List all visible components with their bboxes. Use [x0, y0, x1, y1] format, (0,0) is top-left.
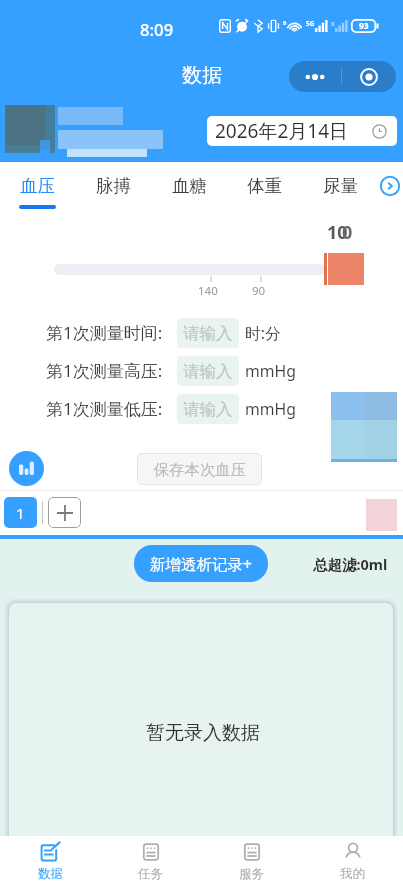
staticText: 第1次测量时间:	[46, 321, 163, 344]
button[interactable]: Close	[342, 61, 396, 92]
staticText: 8:09	[140, 18, 174, 41]
staticText: 10	[327, 220, 348, 245]
button[interactable]: 脉搏	[79, 162, 147, 212]
button[interactable]: 请输入	[177, 394, 239, 424]
button[interactable]: 请输入	[177, 318, 239, 348]
staticText: 保存本次血压	[154, 460, 246, 479]
staticText: 血糖	[172, 175, 207, 197]
staticText: 140	[198, 283, 218, 299]
button[interactable]: 血糖	[155, 162, 223, 212]
staticText: 第1次测量高压:	[46, 359, 163, 382]
button[interactable]: 服务	[201, 836, 302, 888]
staticText: 体重	[247, 175, 282, 197]
staticText: 新增透析记录+	[150, 553, 252, 574]
button[interactable]: 任务	[100, 836, 201, 888]
staticText: 数据	[182, 63, 222, 88]
button[interactable]: 保存本次血压	[137, 453, 262, 485]
button[interactable]: 1	[4, 497, 37, 528]
button[interactable]: More tabs	[380, 176, 400, 196]
staticText: 请输入	[183, 399, 233, 420]
staticText: 暂无录入数据	[146, 721, 260, 745]
staticText: 服务	[239, 866, 264, 882]
button[interactable]: Chart	[9, 451, 44, 486]
staticText: 总超滤:0ml	[313, 554, 388, 574]
button[interactable]: 数据	[0, 836, 100, 888]
button[interactable]: 新增透析记录+	[134, 545, 268, 582]
staticText: 任务	[138, 866, 163, 882]
button[interactable]: Add	[48, 497, 81, 528]
staticText: 请输入	[183, 361, 233, 382]
button[interactable]: 2026年2月14日	[207, 116, 397, 146]
staticText: 93	[359, 20, 369, 32]
button[interactable]: 血压	[3, 162, 71, 212]
staticText: 时:分	[245, 322, 281, 344]
staticText: 我的	[340, 866, 365, 882]
staticText: 数据	[38, 866, 63, 882]
button[interactable]: 尿量	[306, 162, 374, 212]
staticText: 90	[252, 283, 266, 299]
staticText: 6	[283, 19, 287, 27]
staticText: 脉搏	[96, 175, 131, 197]
staticText: 请输入	[183, 323, 233, 344]
staticText: 1	[16, 503, 25, 523]
staticText: x	[331, 19, 335, 28]
button[interactable]: 体重	[230, 162, 298, 212]
staticText: 尿量	[323, 175, 358, 197]
staticText: mmHg	[245, 398, 296, 420]
staticText: 第1次测量低压:	[46, 397, 163, 420]
staticText: mmHg	[245, 360, 296, 382]
staticText: 血压	[20, 175, 55, 197]
staticText: 2026年2月14日	[215, 118, 349, 144]
button[interactable]: 我的	[302, 836, 403, 888]
staticText: 5G	[306, 19, 315, 28]
button[interactable]: Menu	[289, 61, 341, 92]
button[interactable]: 请输入	[177, 356, 239, 386]
staticText: 0	[342, 220, 353, 245]
